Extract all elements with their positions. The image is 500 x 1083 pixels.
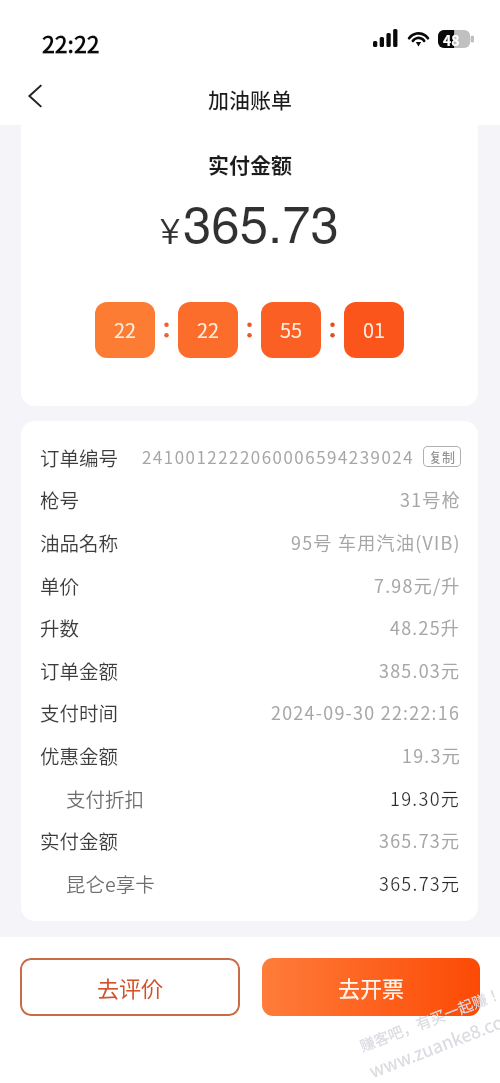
button[interactable]: 实付金额 — [40, 818, 461, 861]
staticText: 升数 — [40, 613, 80, 641]
staticText: 加油账单 — [208, 84, 292, 114]
staticText: 去开票 — [338, 971, 405, 1003]
staticText: 22 — [114, 315, 136, 344]
button[interactable]: 去评价 — [20, 958, 240, 1016]
staticText: 油品名称 — [40, 528, 119, 556]
staticText: 22 — [197, 315, 219, 344]
button[interactable]: 支付折扣 — [66, 776, 461, 819]
staticText: 31号枪 — [400, 486, 461, 512]
staticText: 订单编号 — [40, 443, 119, 471]
staticText: 22:22 — [42, 26, 100, 59]
staticText: 复制 — [429, 447, 456, 466]
staticText: 单价 — [40, 571, 80, 599]
staticText: 实付金额 — [40, 826, 119, 854]
staticText: 支付时间 — [40, 698, 119, 726]
button[interactable]: 升数 — [40, 605, 461, 648]
staticText: 01 — [363, 315, 385, 344]
button[interactable]: Back — [13, 74, 57, 118]
staticText: 19.30元 — [390, 785, 461, 811]
staticText: 去评价 — [97, 971, 164, 1003]
staticText: 优惠金额 — [40, 741, 119, 769]
button[interactable]: 去开票 — [262, 958, 480, 1016]
staticText: 365.73 — [183, 184, 339, 257]
staticText: 支付折扣 — [66, 784, 145, 812]
staticText: 枪号 — [40, 485, 80, 513]
button[interactable]: 单价 — [40, 563, 461, 606]
staticText: 实付金额 — [208, 149, 292, 179]
staticText: 365.73元 — [379, 827, 461, 853]
staticText: 订单金额 — [40, 656, 119, 684]
staticText: www.zuanke8.com — [365, 1002, 500, 1083]
button[interactable]: 支付时间 — [40, 690, 461, 733]
staticText: 2410012222060006594239024 — [142, 444, 415, 469]
button[interactable]: 订单金额 — [40, 648, 461, 691]
button[interactable]: 优惠金额 — [40, 733, 461, 776]
staticText: ¥ — [160, 203, 181, 255]
staticText: 2024-09-30 22:22:16 — [271, 699, 461, 725]
staticText: 95号 车用汽油(VIB) — [291, 529, 461, 555]
button[interactable]: 枪号 — [40, 477, 461, 520]
staticText: 昆仑e享卡 — [66, 869, 155, 897]
button[interactable]: 油品名称 — [40, 520, 461, 563]
staticText: 365.73元 — [379, 870, 461, 896]
staticText: 赚客吧，有买一起赚！ — [356, 982, 500, 1057]
staticText: 55 — [280, 315, 302, 344]
staticText: 19.3元 — [402, 742, 461, 768]
staticText: 48.25升 — [390, 614, 461, 640]
staticText: 385.03元 — [379, 657, 461, 683]
staticText: 7.98元/升 — [374, 572, 461, 598]
button[interactable]: 昆仑e享卡 — [66, 861, 461, 904]
staticText: 48 — [443, 30, 460, 48]
button[interactable]: 复制 — [423, 446, 461, 467]
